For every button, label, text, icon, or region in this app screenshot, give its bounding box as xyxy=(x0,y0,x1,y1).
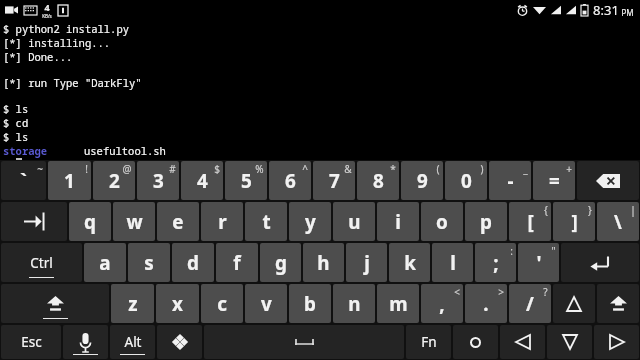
button[interactable]: ` xyxy=(1,161,46,200)
button[interactable]: z xyxy=(111,284,154,323)
button[interactable]: k xyxy=(389,243,430,282)
staticText: ) xyxy=(480,162,484,176)
button[interactable]: w xyxy=(113,202,155,241)
staticText: " xyxy=(551,244,556,258)
button[interactable]: Esc xyxy=(1,325,61,359)
button[interactable]: y xyxy=(289,202,331,241)
staticText: g xyxy=(275,250,287,276)
staticText: { xyxy=(544,203,548,217)
button[interactable]: o xyxy=(421,202,463,241)
button[interactable]: ' xyxy=(518,243,559,282)
button[interactable]: t xyxy=(245,202,287,241)
staticText: / xyxy=(526,291,534,317)
button[interactable]: c xyxy=(201,284,243,323)
button[interactable]: Shift xyxy=(597,284,639,323)
button[interactable]: g xyxy=(260,243,301,282)
staticText: q xyxy=(84,209,96,235)
button[interactable]: 5 xyxy=(225,161,267,200)
button[interactable]: m xyxy=(377,284,419,323)
staticText: v xyxy=(261,291,272,317)
button[interactable]: Down xyxy=(547,325,592,359)
staticText: ' xyxy=(536,250,542,276)
button[interactable]: b xyxy=(289,284,331,323)
button[interactable]: Space xyxy=(204,325,404,359)
button[interactable]: Right xyxy=(594,325,639,359)
button[interactable]: Left xyxy=(500,325,545,359)
staticText: $ cd xyxy=(3,116,29,130)
button[interactable]: l xyxy=(432,243,473,282)
staticText: 4 xyxy=(44,1,50,13)
button[interactable]: Keyboard settings xyxy=(157,325,202,359)
staticText: # xyxy=(169,162,176,176)
button[interactable]: x xyxy=(156,284,199,323)
button[interactable]: d xyxy=(172,243,214,282)
button[interactable]: \ xyxy=(597,202,639,241)
button[interactable]: Alt xyxy=(110,325,155,359)
button[interactable]: f xyxy=(216,243,258,282)
button[interactable]: i xyxy=(377,202,419,241)
button[interactable]: Ctrl xyxy=(1,243,82,282)
button[interactable]: p xyxy=(465,202,507,241)
staticText: n xyxy=(348,291,361,317)
staticText: Alt xyxy=(124,333,142,351)
staticText: [*] installing... xyxy=(3,36,111,50)
staticText: ] xyxy=(571,209,578,235)
button[interactable]: a xyxy=(84,243,126,282)
button[interactable]: Shift xyxy=(1,284,109,323)
button[interactable]: ; xyxy=(475,243,516,282)
button[interactable]: 3 xyxy=(137,161,179,200)
button[interactable]: v xyxy=(245,284,287,323)
staticText: , xyxy=(439,291,445,317)
button[interactable]: 7 xyxy=(313,161,355,200)
button[interactable]: j xyxy=(346,243,387,282)
staticText: 0 xyxy=(461,168,472,194)
button[interactable]: r xyxy=(201,202,243,241)
button[interactable]: Tab xyxy=(1,202,67,241)
button[interactable]: [ xyxy=(509,202,551,241)
button[interactable]: Home xyxy=(453,325,498,359)
button[interactable]: h xyxy=(303,243,344,282)
staticText: e xyxy=(172,209,184,235)
button[interactable]: Fn xyxy=(406,325,451,359)
staticText: b xyxy=(304,291,316,317)
button[interactable]: s xyxy=(128,243,170,282)
staticText: < xyxy=(454,285,460,299)
staticText: 7 xyxy=(329,168,340,194)
staticText: u xyxy=(348,209,361,235)
button[interactable]: 1 xyxy=(48,161,91,200)
button[interactable]: e xyxy=(157,202,199,241)
button[interactable]: q xyxy=(69,202,111,241)
staticText: 8 xyxy=(373,168,384,194)
button[interactable]: / xyxy=(509,284,551,323)
staticText: - xyxy=(507,168,514,194)
staticText: x xyxy=(172,291,183,317)
button[interactable]: 0 xyxy=(445,161,487,200)
button[interactable]: 2 xyxy=(93,161,135,200)
button[interactable]: . xyxy=(465,284,507,323)
button[interactable]: u xyxy=(333,202,375,241)
button[interactable]: Enter xyxy=(561,243,639,282)
button[interactable]: 9 xyxy=(401,161,443,200)
staticText: ; xyxy=(493,250,499,276)
button[interactable]: n xyxy=(333,284,375,323)
staticText: . xyxy=(483,291,489,317)
staticText: & xyxy=(344,162,352,176)
staticText: f xyxy=(233,250,241,276)
button[interactable]: 6 xyxy=(269,161,311,200)
button[interactable]: Backspace xyxy=(577,161,639,200)
button[interactable]: 8 xyxy=(357,161,399,200)
button[interactable]: - xyxy=(489,161,531,200)
button[interactable]: Voice input xyxy=(63,325,108,359)
button[interactable]: , xyxy=(421,284,463,323)
staticText: 6 xyxy=(285,168,296,194)
staticText: c xyxy=(217,291,227,317)
button[interactable]: = xyxy=(533,161,575,200)
staticText: Esc xyxy=(21,333,42,351)
staticText: > xyxy=(498,285,504,299)
button[interactable]: ] xyxy=(553,202,595,241)
staticText: 5 xyxy=(241,168,252,194)
staticText: i xyxy=(395,209,401,235)
button[interactable]: Up xyxy=(553,284,595,323)
button[interactable]: 4 xyxy=(181,161,223,200)
staticText: @ xyxy=(122,162,132,176)
